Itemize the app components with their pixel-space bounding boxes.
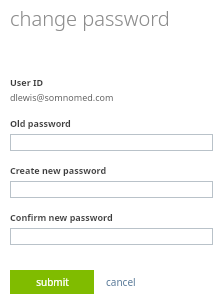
staticText: submit [36,275,69,289]
staticText: Create new password [10,164,107,176]
staticText: change password [10,5,170,32]
staticText: dlewis@somnomed.com [10,91,114,103]
button[interactable]: cancel [94,270,144,294]
staticText: cancel [106,275,136,289]
staticText: Confirm new password [10,211,113,223]
button[interactable]: Password input field [10,134,213,151]
staticText: Old password [10,117,71,129]
button[interactable]: submit [10,270,94,294]
staticText: User ID [10,76,44,88]
button[interactable]: Password input field [10,228,213,245]
button[interactable]: Password input field [10,181,213,198]
